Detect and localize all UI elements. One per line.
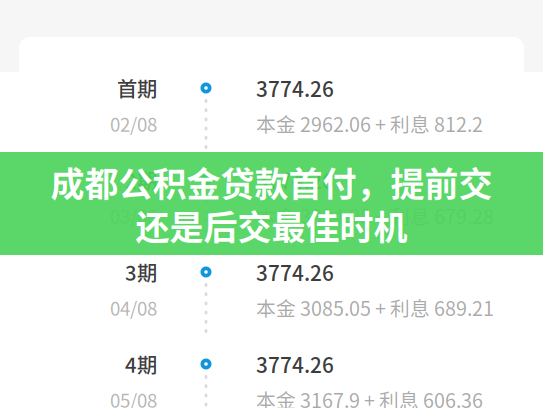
staticText: 04/08	[110, 294, 157, 321]
staticText: 本金 2962.06 + 利息 812.2	[256, 109, 483, 138]
staticText: 本金 3094.98 + 利息 679.28	[256, 201, 494, 230]
staticText: 3774.26	[256, 257, 334, 287]
button[interactable]: 首期	[0, 72, 543, 164]
staticText: 3774.26	[256, 349, 334, 379]
staticText: 3774.26	[256, 165, 334, 195]
staticText: 2期	[125, 165, 157, 195]
staticText: 还是后交最佳时机	[135, 200, 407, 250]
staticText: 成都公积金贷款首付，提前交	[50, 157, 492, 206]
staticText: 3774.26	[256, 73, 334, 103]
button[interactable]: 3期	[0, 256, 543, 348]
button[interactable]: 4期	[0, 348, 543, 408]
staticText: 4期	[125, 349, 157, 379]
staticText: 3期	[125, 257, 157, 287]
staticText: 本金 3085.05 + 利息 689.21	[256, 293, 494, 322]
staticText: 03/08	[110, 202, 157, 229]
staticText: 首期	[117, 73, 157, 103]
staticText: 本金 3167.9 + 利息 606.36	[256, 385, 483, 408]
staticText: 02/08	[110, 110, 157, 137]
staticText: 05/08	[110, 386, 157, 408]
button[interactable]: 2期	[0, 164, 543, 256]
